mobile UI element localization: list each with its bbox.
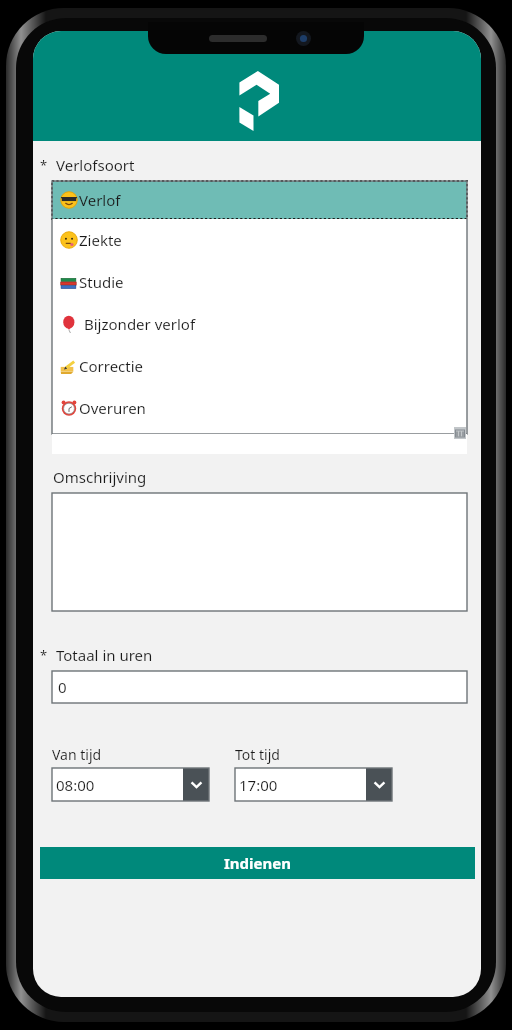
button[interactable]: Indienen bbox=[40, 847, 475, 879]
button[interactable]: 17:00 bbox=[235, 768, 392, 801]
other: Open tijd keuzelijst bbox=[366, 768, 392, 801]
staticText: 17:00 bbox=[239, 775, 278, 795]
staticText: Totaal in uren bbox=[56, 645, 153, 665]
staticText: Van tijd bbox=[52, 745, 102, 764]
staticText: 08:00 bbox=[56, 775, 95, 795]
staticText: Omschrijving bbox=[53, 467, 147, 487]
button[interactable]: Ziekte bbox=[52, 219, 467, 261]
staticText: Overuren bbox=[79, 398, 146, 418]
button[interactable] bbox=[52, 493, 467, 611]
staticText: Ziekte bbox=[79, 230, 122, 250]
staticText: Bijzonder verlof bbox=[84, 314, 196, 334]
staticText: 0 bbox=[58, 677, 67, 697]
staticText: Correctie bbox=[79, 356, 144, 376]
button[interactable]: Correctie bbox=[52, 345, 467, 387]
button[interactable]: Bijzonder verlof bbox=[52, 303, 467, 345]
other: Open tijd keuzelijst bbox=[183, 768, 209, 801]
button[interactable]: Studie bbox=[52, 261, 467, 303]
button[interactable]: Overuren bbox=[52, 387, 467, 429]
staticText: * bbox=[40, 646, 48, 664]
button[interactable]: Verlof bbox=[52, 181, 467, 219]
staticText: Tot tijd bbox=[235, 745, 280, 764]
staticText: Studie bbox=[79, 272, 124, 292]
staticText: Verlofsoort bbox=[56, 155, 135, 175]
button[interactable]: 0 bbox=[52, 671, 467, 703]
staticText: Indienen bbox=[224, 853, 291, 873]
button[interactable]: 08:00 bbox=[52, 768, 209, 801]
staticText: Verlof bbox=[79, 190, 121, 210]
staticText: * bbox=[40, 156, 48, 174]
